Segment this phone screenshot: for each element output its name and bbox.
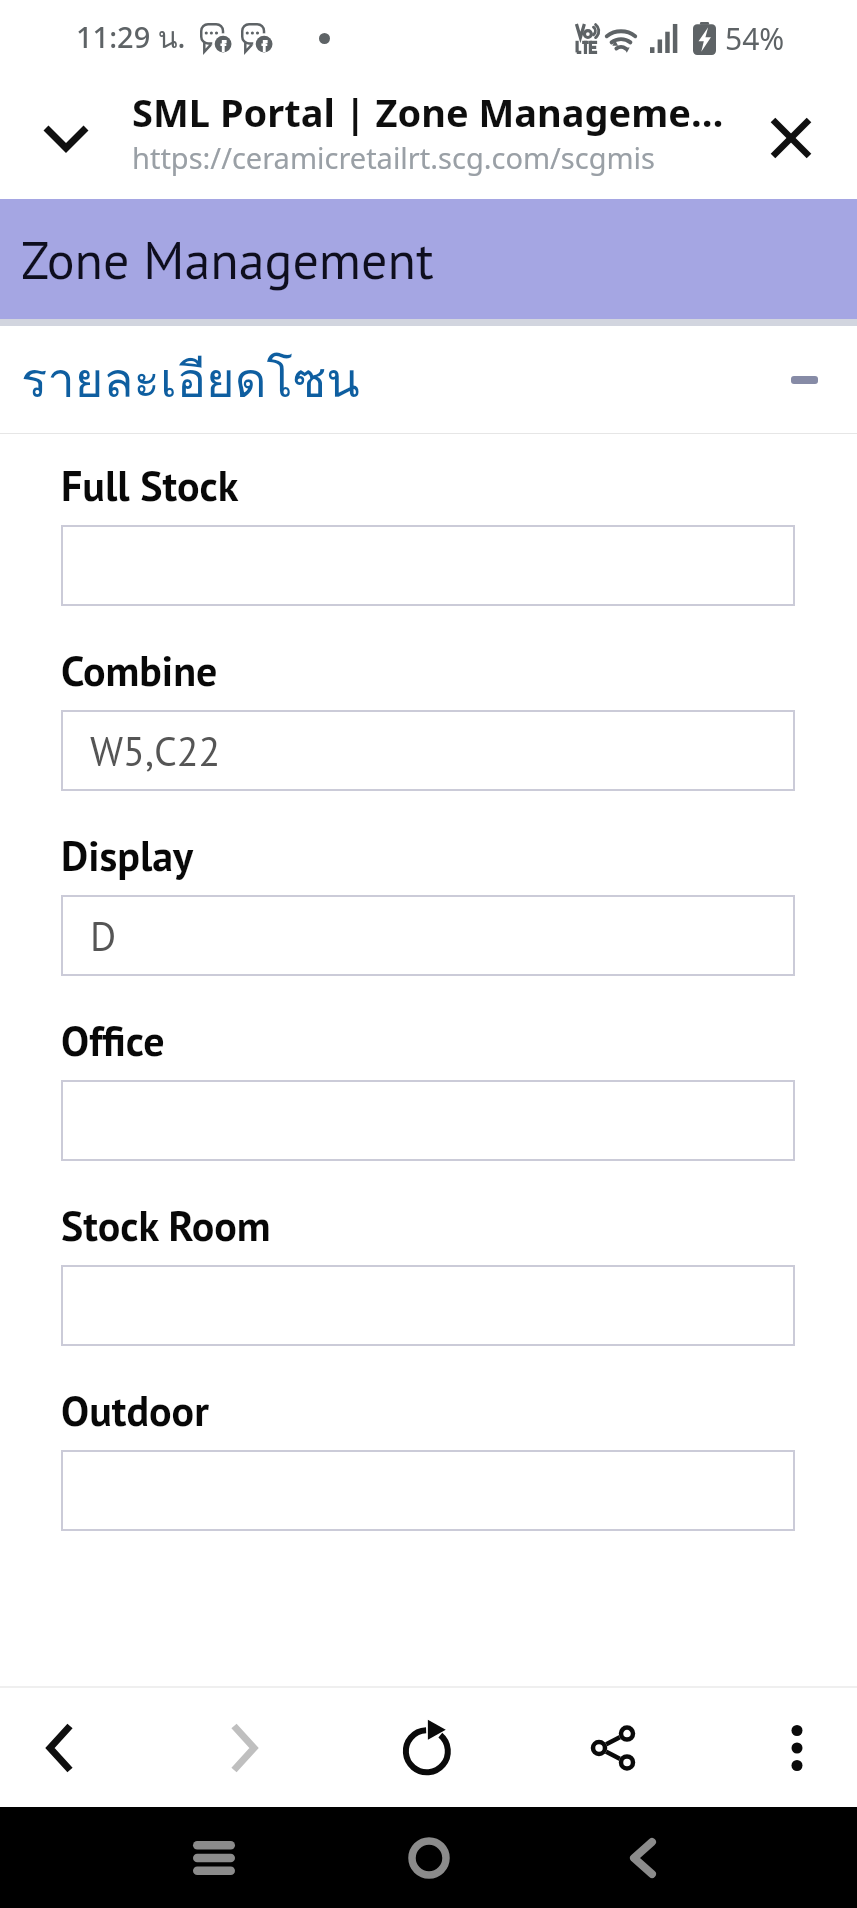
staticText: Stock Room (61, 1198, 271, 1252)
button[interactable]: Share (553, 1688, 673, 1807)
staticText: รายละเอียดโซน (21, 341, 360, 419)
button[interactable]: Home (322, 1807, 536, 1908)
button[interactable] (61, 525, 795, 606)
staticText: 11:29 น. (76, 15, 186, 61)
button[interactable]: D (61, 895, 795, 976)
staticText: W5,C22 (90, 725, 221, 777)
staticText: Outdoor (61, 1383, 209, 1437)
button[interactable] (61, 1080, 795, 1161)
button[interactable]: Forward (184, 1688, 304, 1807)
staticText: Display (61, 828, 194, 882)
button[interactable]: Refresh (369, 1688, 489, 1807)
button[interactable]: Recents (107, 1807, 321, 1908)
staticText: Office (61, 1013, 165, 1067)
staticText: 54% (725, 18, 785, 59)
button[interactable] (61, 1450, 795, 1531)
staticText: Combine (61, 643, 218, 697)
button[interactable]: Back (0, 1688, 120, 1807)
button[interactable]: W5,C22 (61, 710, 795, 791)
button[interactable]: More options (737, 1688, 857, 1807)
button[interactable]: Collapse section (791, 376, 818, 384)
button[interactable]: Back (536, 1807, 750, 1908)
staticText: https://ceramicretailrt.scg.com/scgmis (132, 138, 655, 177)
staticText: Zone Management (21, 226, 434, 293)
button[interactable]: Close (747, 94, 835, 182)
button[interactable]: Collapse (22, 94, 110, 182)
staticText: Full Stock (61, 458, 239, 512)
staticText: SML Portal | Zone Manageme… (132, 86, 724, 138)
button[interactable] (61, 1265, 795, 1346)
staticText: D (90, 910, 117, 962)
